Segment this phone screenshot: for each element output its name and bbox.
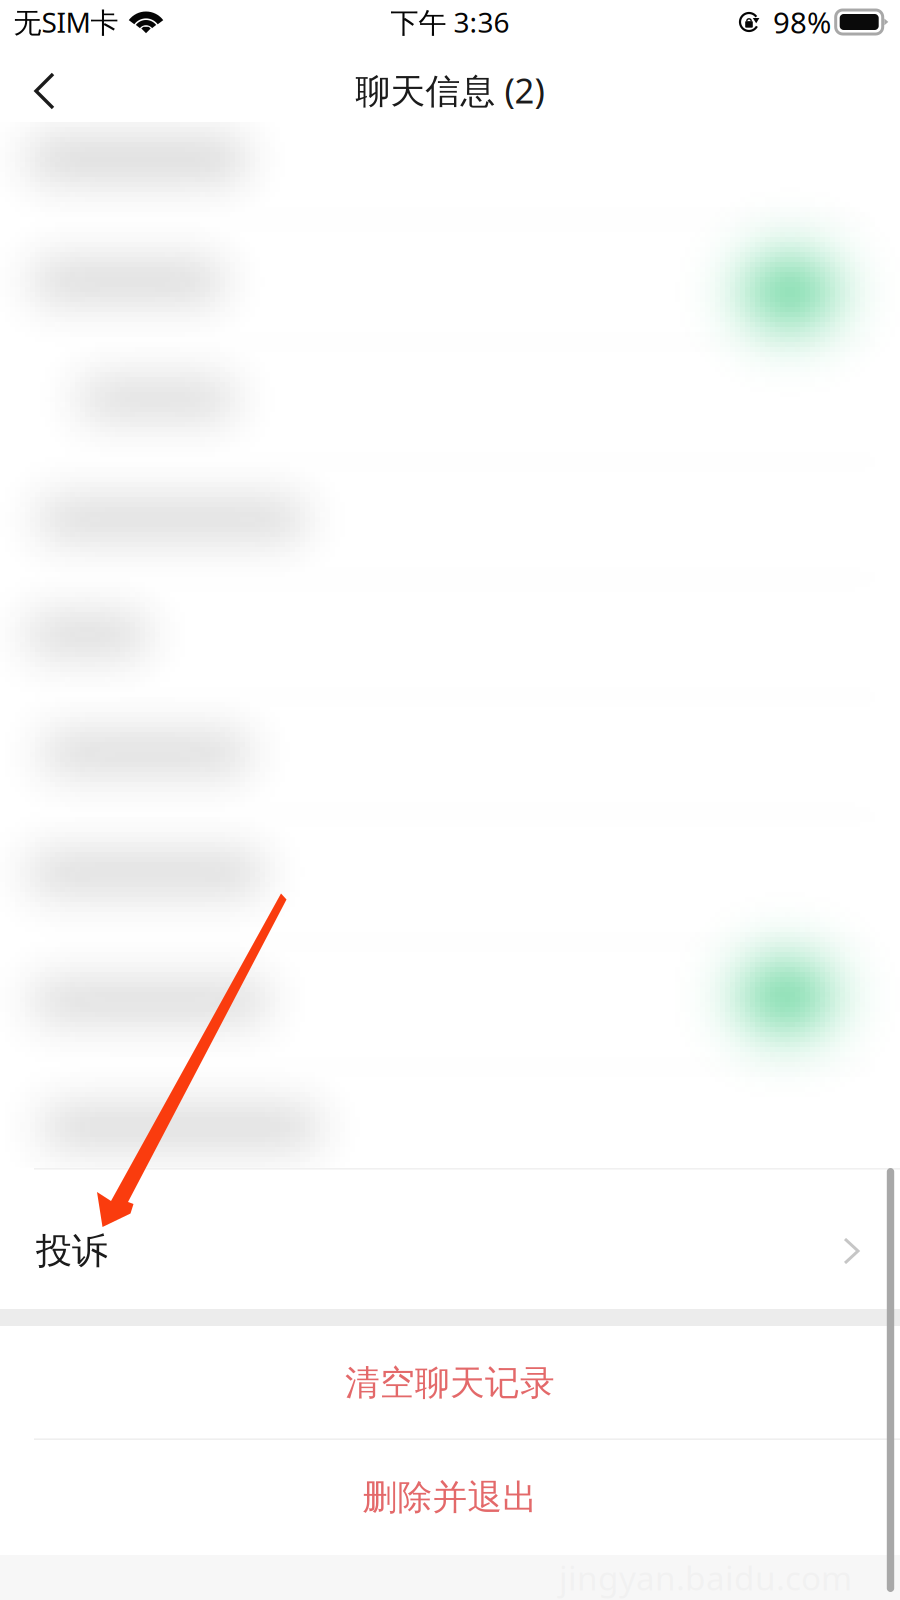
button[interactable]: 删除并退出 xyxy=(0,1440,900,1555)
staticText: 聊天信息 (2) xyxy=(355,67,544,113)
staticText: 投诉 xyxy=(36,1229,108,1273)
staticText: 下午 3:36 xyxy=(390,3,509,41)
button[interactable]: 清空聊天记录 xyxy=(0,1326,900,1440)
staticText: 98% xyxy=(773,2,831,41)
button[interactable]: 投诉 xyxy=(0,1168,900,1309)
staticText: 删除并退出 xyxy=(362,1476,537,1519)
button[interactable]: Back xyxy=(0,56,92,122)
staticText: 无SIM卡 xyxy=(13,3,118,41)
staticText: 清空聊天记录 xyxy=(345,1362,555,1404)
